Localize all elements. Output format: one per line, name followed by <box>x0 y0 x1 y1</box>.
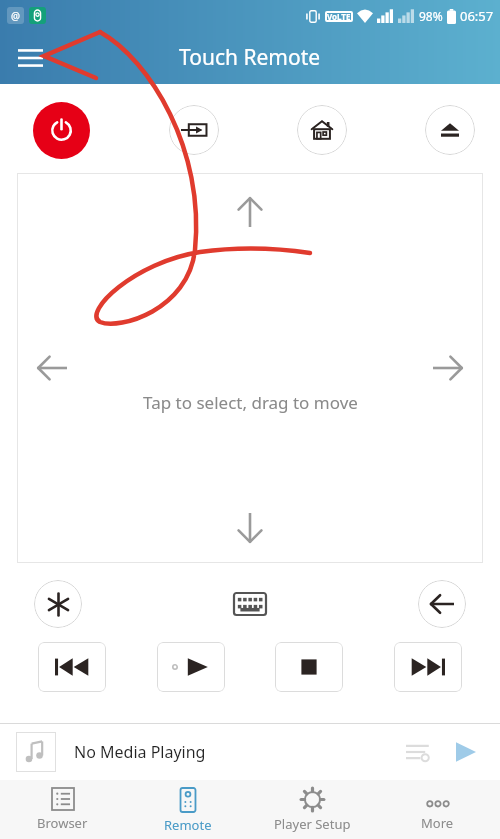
button[interactable]: Keyboard <box>228 587 272 621</box>
button[interactable]: Touch pad <box>17 173 483 563</box>
staticText: No Media Playing <box>74 741 206 763</box>
staticText: Remote <box>164 816 212 834</box>
staticText: More <box>421 814 454 832</box>
staticText: Browser <box>37 814 88 832</box>
staticText: VoLTE <box>327 11 351 22</box>
button[interactable]: Next <box>394 642 462 692</box>
staticText: Tap to select, drag to move <box>143 391 358 414</box>
button[interactable]: Queue <box>400 734 436 770</box>
staticText: Player Setup <box>274 815 351 833</box>
button[interactable]: Menu star <box>34 580 82 628</box>
staticText: Touch Remote <box>179 43 321 72</box>
button[interactable]: Player Setup <box>250 780 375 839</box>
staticText: 98% <box>419 8 443 24</box>
button[interactable]: Stop <box>275 642 343 692</box>
button[interactable]: Play <box>448 734 484 770</box>
button[interactable]: Input <box>169 105 219 155</box>
button[interactable]: Menu <box>8 36 52 80</box>
staticText: 06:57 <box>460 7 494 25</box>
button[interactable]: Browser <box>0 780 125 839</box>
button[interactable]: More <box>375 780 500 839</box>
staticText: @ <box>11 9 20 23</box>
button[interactable]: No Media Playing <box>0 723 500 780</box>
button[interactable]: Home <box>297 105 347 155</box>
button[interactable]: Power <box>33 102 90 159</box>
button[interactable]: Remote <box>125 780 250 839</box>
button[interactable]: Eject <box>425 105 475 155</box>
button[interactable]: Previous <box>38 642 106 692</box>
button[interactable]: Play <box>157 642 225 692</box>
button[interactable]: Back <box>418 580 466 628</box>
